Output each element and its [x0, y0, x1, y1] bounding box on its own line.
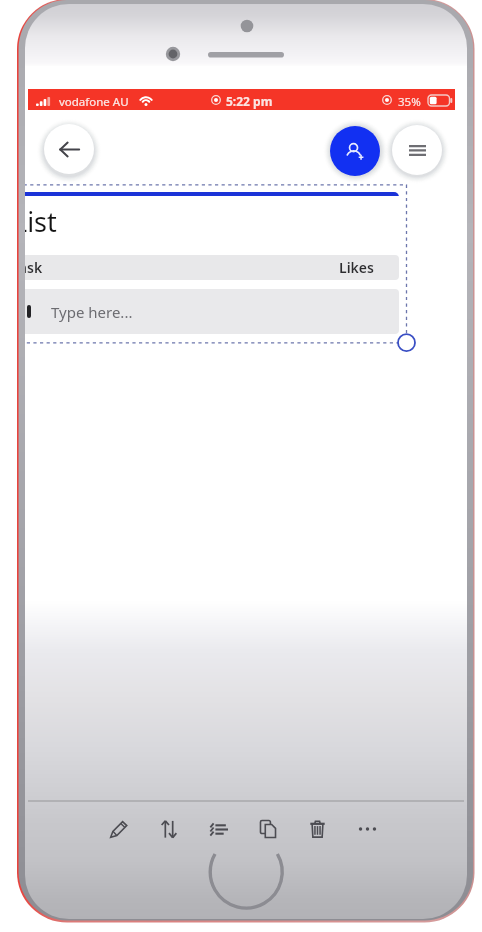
- button[interactable]: Edit: [104, 812, 133, 846]
- staticText: vodafone AU: [59, 94, 129, 110]
- button[interactable]: Menu: [392, 125, 442, 175]
- button[interactable]: Copy: [253, 812, 282, 846]
- staticText: List: [25, 203, 57, 240]
- button[interactable]: More: [353, 812, 382, 846]
- button[interactable]: Checklist: [204, 812, 233, 846]
- staticText: Likes: [339, 258, 374, 277]
- staticText: 35%: [398, 94, 421, 110]
- staticText: Type here...: [51, 302, 133, 322]
- staticText: Task: [25, 258, 43, 277]
- staticText: 5:22 pm: [226, 93, 273, 109]
- button[interactable]: List: [25, 192, 399, 247]
- button[interactable]: Add person: [330, 126, 380, 176]
- button[interactable]: Delete: [303, 812, 332, 846]
- button[interactable]: Type here...: [25, 289, 399, 334]
- button[interactable]: Back: [44, 124, 94, 174]
- button[interactable]: Sort: [154, 812, 183, 846]
- button[interactable]: Task: [25, 255, 399, 280]
